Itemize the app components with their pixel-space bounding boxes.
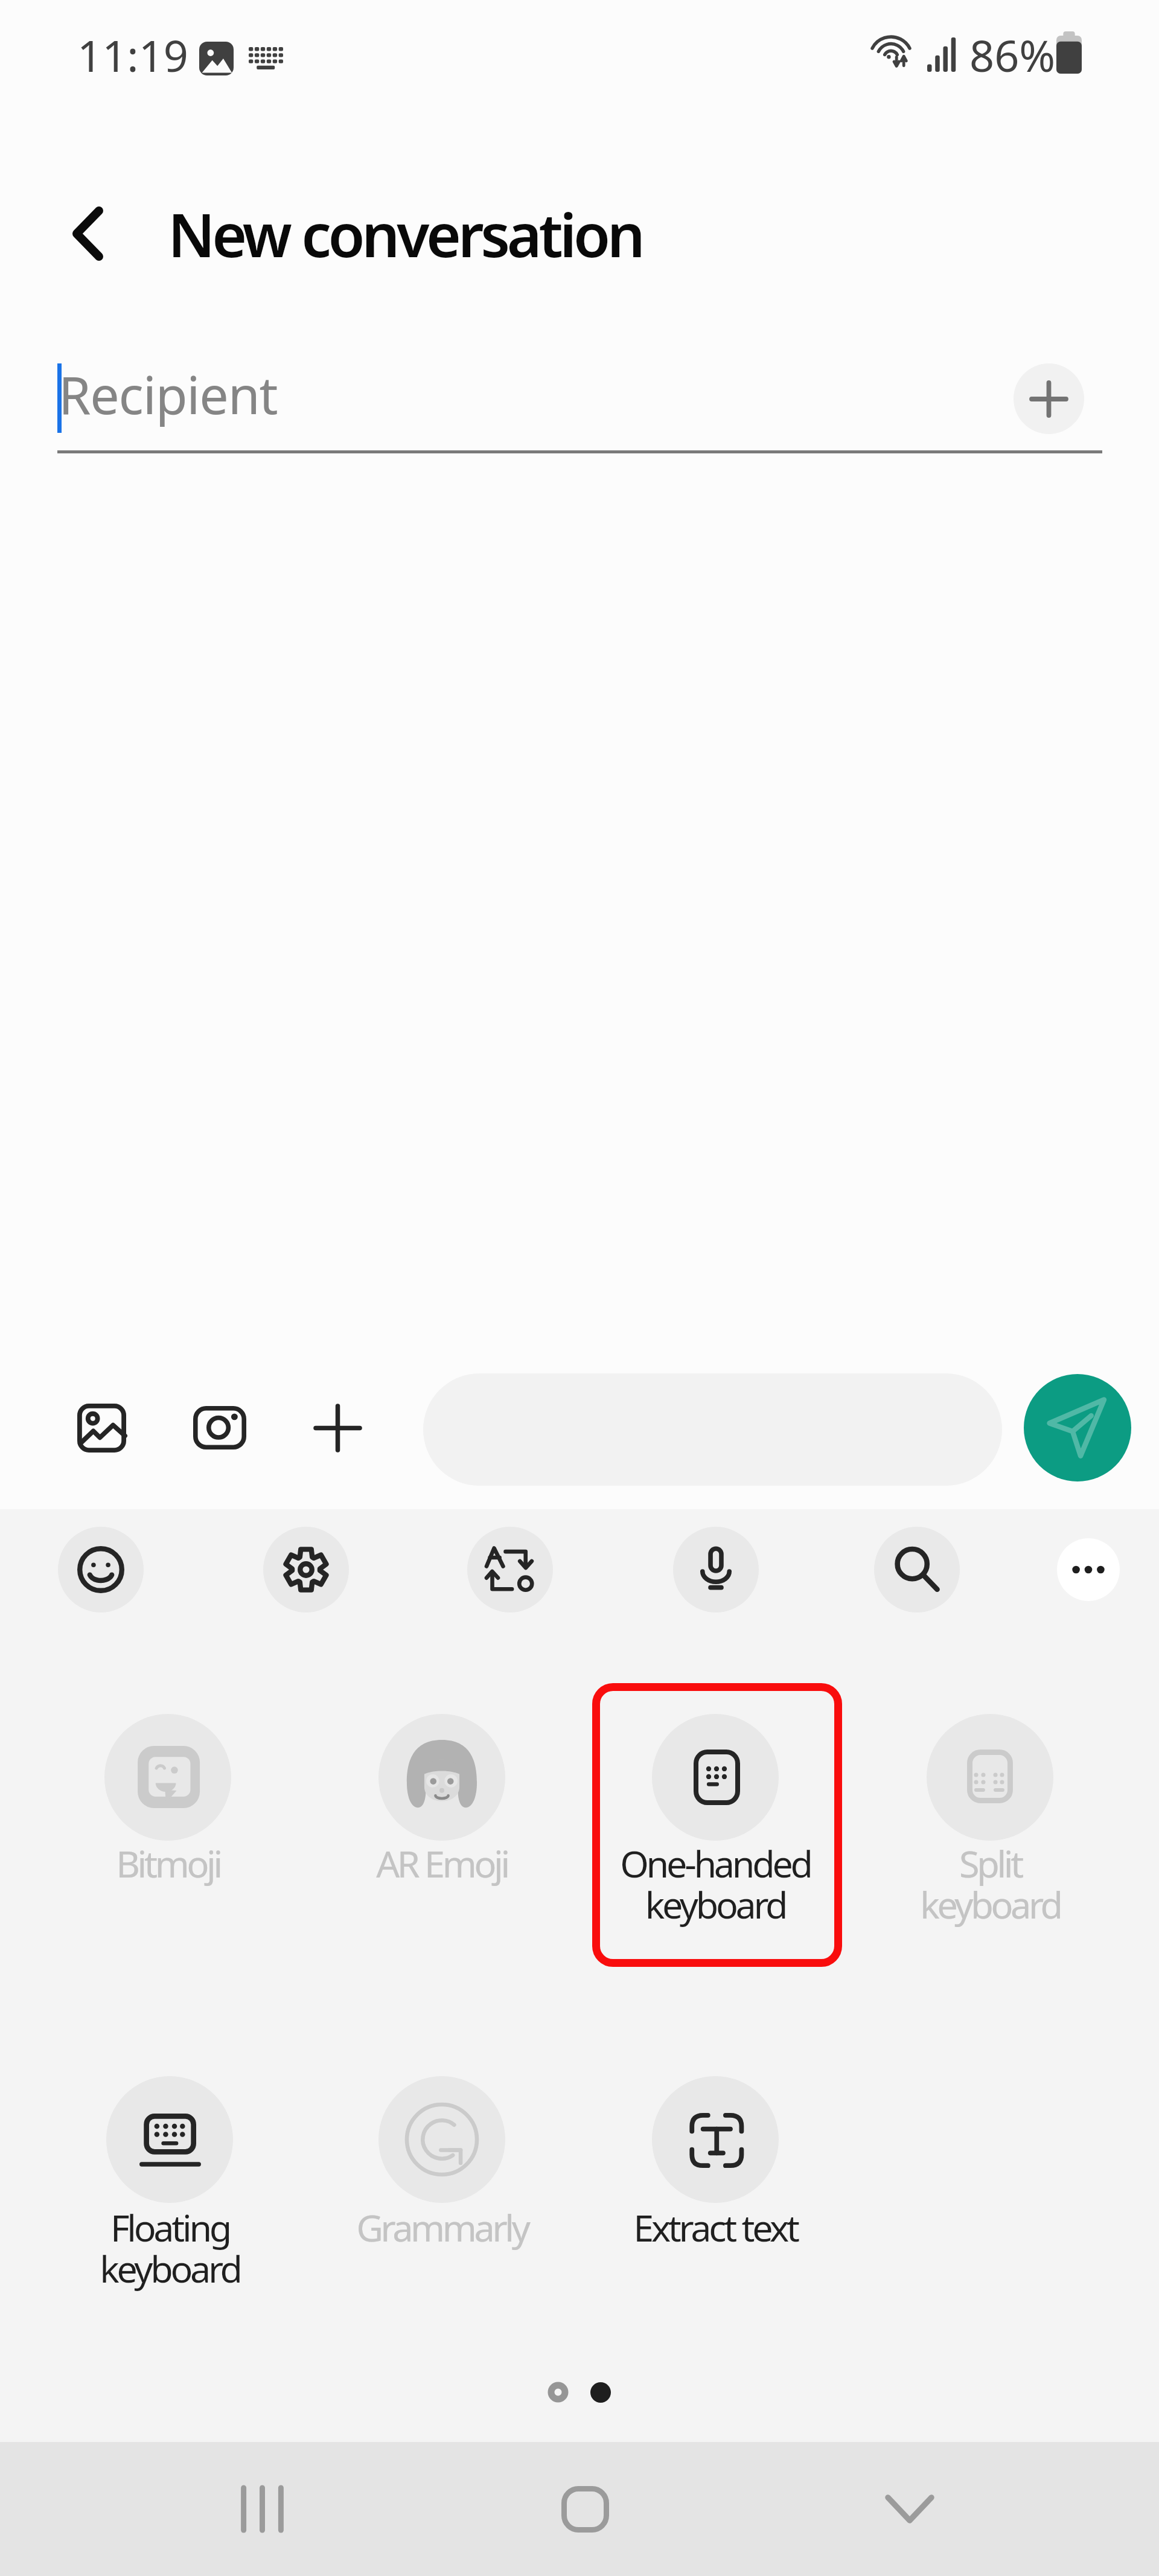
- staticText: 11:19: [77, 25, 189, 85]
- button[interactable]: Back: [51, 197, 124, 270]
- button[interactable]: Floating keyboard: [45, 2049, 295, 2321]
- staticText: One-handed keyboard: [620, 1838, 811, 1929]
- button[interactable]: Gallery: [65, 1392, 138, 1464]
- staticText: New conversation: [168, 193, 642, 275]
- button[interactable]: Translate: [467, 1527, 553, 1612]
- button[interactable]: Emoji: [58, 1527, 144, 1612]
- staticText: 86%: [969, 25, 1056, 85]
- button[interactable]: Grammarly: [317, 2049, 567, 2321]
- staticText: AR Emoji: [376, 1838, 508, 1888]
- button[interactable]: Hide keyboard: [813, 2442, 1006, 2576]
- button[interactable]: AR Emoji: [317, 1687, 567, 1958]
- button[interactable]: Bitmoji: [43, 1687, 293, 1958]
- button[interactable]: Search: [874, 1527, 960, 1612]
- button[interactable]: Add recipient: [1014, 363, 1084, 434]
- staticText: Floating keyboard: [100, 2202, 240, 2293]
- staticText: Split keyboard: [920, 1838, 1061, 1929]
- button[interactable]: Extract text: [590, 2049, 840, 2321]
- button[interactable]: Home: [488, 2442, 682, 2576]
- button[interactable]: Split keyboard: [865, 1687, 1115, 1958]
- staticText: Extract text: [633, 2202, 797, 2252]
- button[interactable]: Recents: [165, 2442, 359, 2576]
- button[interactable]: More options: [1057, 1538, 1120, 1601]
- button[interactable]: Voice input: [673, 1527, 759, 1612]
- button[interactable]: Send: [1024, 1374, 1131, 1481]
- button[interactable]: Keyboard settings: [263, 1527, 349, 1612]
- staticText: Bitmoji: [116, 1838, 220, 1888]
- staticText: Grammarly: [356, 2202, 528, 2252]
- button[interactable]: Camera: [184, 1392, 256, 1464]
- button[interactable]: One-handed keyboard: [590, 1687, 840, 1958]
- button[interactable]: Add attachment: [301, 1392, 374, 1464]
- staticText: Recipient: [59, 359, 278, 429]
